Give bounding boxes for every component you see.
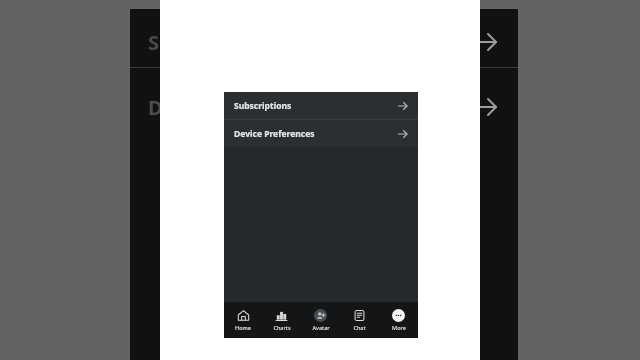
button[interactable]: Charts [262, 302, 301, 338]
button[interactable]: Subscriptions [130, 17, 518, 67]
button[interactable]: Chat [340, 302, 379, 338]
staticText: Charts [273, 324, 291, 331]
staticText: Device Preferences [234, 128, 315, 140]
button[interactable]: Avatar [301, 302, 340, 338]
staticText: Home [235, 324, 251, 331]
staticText: More [392, 324, 406, 331]
button[interactable]: Subscriptions [224, 92, 418, 119]
button[interactable]: Device Preferences [130, 82, 518, 132]
button[interactable]: More [379, 302, 418, 338]
staticText: Chat [353, 324, 366, 331]
staticText: Subscriptions [234, 100, 292, 112]
button[interactable]: Home [224, 302, 262, 338]
staticText: Subscriptions [148, 29, 283, 56]
staticText: Device Preferences [148, 94, 338, 121]
staticText: Avatar [312, 324, 330, 331]
button[interactable]: Device Preferences [224, 120, 418, 147]
